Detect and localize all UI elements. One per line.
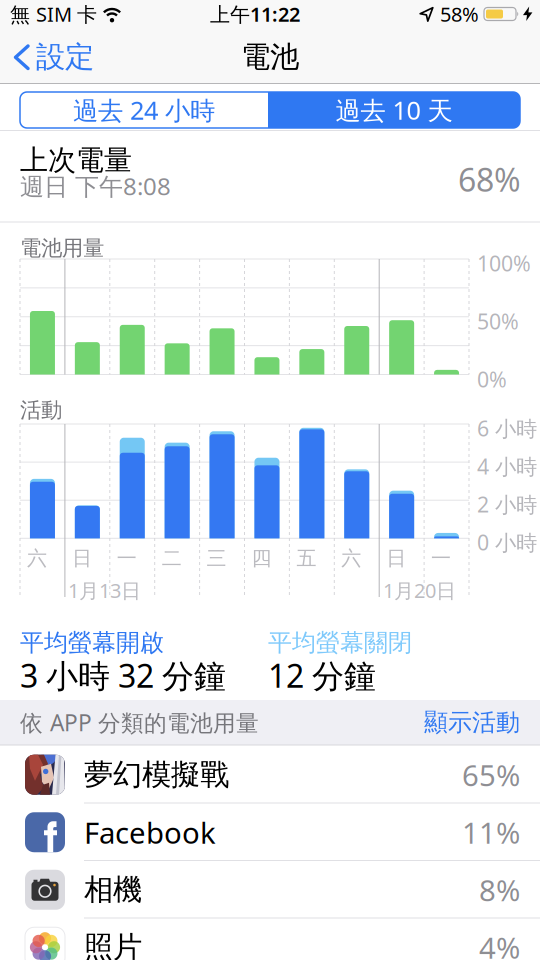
staticText: 11% (462, 813, 520, 852)
staticText: 58% (440, 1, 479, 27)
staticText: 顯示活動 (424, 708, 520, 737)
staticText: 68% (458, 158, 521, 200)
staticText: 6 小時 (477, 414, 537, 442)
staticText: 五 (296, 546, 316, 571)
staticText: 電池 (241, 39, 299, 75)
staticText: 二 (162, 546, 182, 571)
staticText: 活動 (20, 397, 62, 423)
staticText: 1月13日 (68, 577, 141, 604)
button[interactable]: Facebook (0, 803, 540, 861)
staticText: 三 (207, 546, 227, 571)
button[interactable]: 設定 (13, 42, 94, 72)
staticText: 3 小時 32 分鐘 (20, 654, 226, 696)
button[interactable]: 顯示活動 (424, 708, 520, 737)
staticText: 日 (386, 546, 406, 571)
staticText: 4% (479, 928, 520, 960)
staticText: 8% (479, 870, 520, 909)
staticText: 日 (72, 546, 92, 571)
staticText: 65% (462, 755, 520, 794)
staticText: 0 小時 (477, 528, 537, 556)
staticText: 設定 (36, 39, 94, 75)
button[interactable]: 相機 (0, 861, 540, 918)
staticText: 平均螢幕關閉 (268, 628, 412, 657)
staticText: 夢幻模擬戰 (84, 757, 229, 793)
staticText: 12 分鐘 (268, 654, 376, 696)
staticText: 四 (251, 546, 271, 571)
staticText: 過去 24 小時 (73, 93, 215, 127)
staticText: 一 (431, 546, 451, 571)
staticText: 過去 10 天 (335, 93, 452, 127)
staticText: 六 (27, 546, 47, 571)
staticText: 平均螢幕開啟 (20, 628, 164, 657)
staticText: 1月20日 (383, 577, 456, 604)
staticText: 照片 (84, 929, 142, 960)
staticText: 無 SIM 卡 (10, 1, 97, 27)
staticText: 六 (341, 546, 361, 571)
staticText: 電池用量 (20, 235, 104, 261)
staticText: 依 APP 分類的電池用量 (20, 707, 259, 737)
staticText: 一 (117, 546, 137, 571)
staticText: 0% (477, 365, 507, 393)
staticText: 50% (477, 307, 519, 335)
staticText: 上午11:22 (210, 1, 300, 27)
staticText: 上次電量 (20, 143, 132, 177)
button[interactable]: 夢幻模擬戰 (0, 746, 540, 803)
button[interactable]: 過去 10 天 (268, 92, 520, 128)
button[interactable]: 過去 24 小時 (20, 92, 268, 128)
staticText: 相機 (84, 872, 142, 908)
staticText: 2 小時 (477, 490, 537, 518)
staticText: 100% (477, 249, 531, 277)
staticText: 週日 下午8:08 (20, 170, 171, 202)
button[interactable]: 照片 (0, 918, 540, 960)
staticText: Facebook (84, 813, 216, 852)
staticText: 4 小時 (477, 452, 537, 480)
